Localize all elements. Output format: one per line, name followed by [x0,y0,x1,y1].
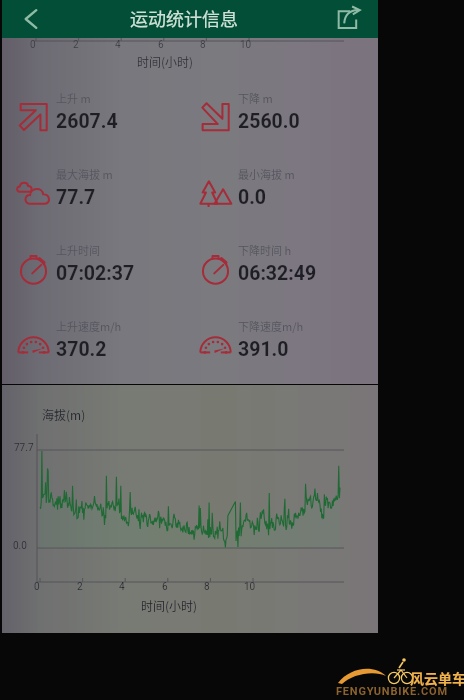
staticText: 时间(小时) [137,53,194,70]
staticText: 4 [119,581,125,593]
button[interactable]: 最小海拔 m [199,149,378,225]
staticText: 最大海拔 m [56,166,113,182]
staticText: 06:32:49 [238,262,317,285]
staticText: 时间(小时) [141,597,198,614]
staticText: 下降 m [238,90,273,106]
staticText: 2607.4 [56,110,118,133]
staticText: 下降速度m/h [238,318,304,334]
staticText: 上升时间 [56,242,100,258]
staticText: 2560.0 [238,110,300,133]
staticText: 391.0 [238,338,289,361]
staticText: 0 [34,581,40,593]
staticText: 8 [204,581,210,593]
staticText: 0.0 [13,540,27,552]
staticText: 370.2 [56,338,107,361]
staticText: 风云单车 [410,668,464,688]
staticText: 上升速度m/h [56,318,122,334]
button[interactable]: Share [328,0,378,38]
staticText: 2 [77,581,83,593]
staticText: 上升 m [56,90,91,106]
staticText: 07:02:37 [56,262,135,285]
button[interactable]: 上升 m [17,73,184,149]
staticText: 2 [73,39,79,51]
staticText: 77.7 [56,186,96,209]
staticText: 77.7 [14,442,34,454]
staticText: 10 [244,581,256,593]
button[interactable]: 上升时间 [17,225,184,301]
staticText: 4 [115,39,121,51]
staticText: 海拔(m) [42,406,86,423]
staticText: 6 [162,581,168,593]
staticText: FENGYUNBIKE.COM [336,685,448,698]
staticText: 运动统计信息 [130,5,238,31]
staticText: 10 [240,39,252,51]
button[interactable]: 最大海拔 m [17,149,184,225]
button[interactable]: 下降时间 h [199,225,378,301]
button[interactable]: 上升速度m/h [17,301,184,377]
button[interactable]: 下降 m [199,73,378,149]
button[interactable]: Back [2,0,56,38]
staticText: 下降时间 h [238,242,292,258]
staticText: 0 [30,39,36,51]
staticText: 0.0 [238,186,267,209]
staticText: 最小海拔 m [238,166,295,182]
button[interactable]: 下降速度m/h [199,301,378,377]
staticText: 6 [158,39,164,51]
staticText: 8 [200,39,206,51]
